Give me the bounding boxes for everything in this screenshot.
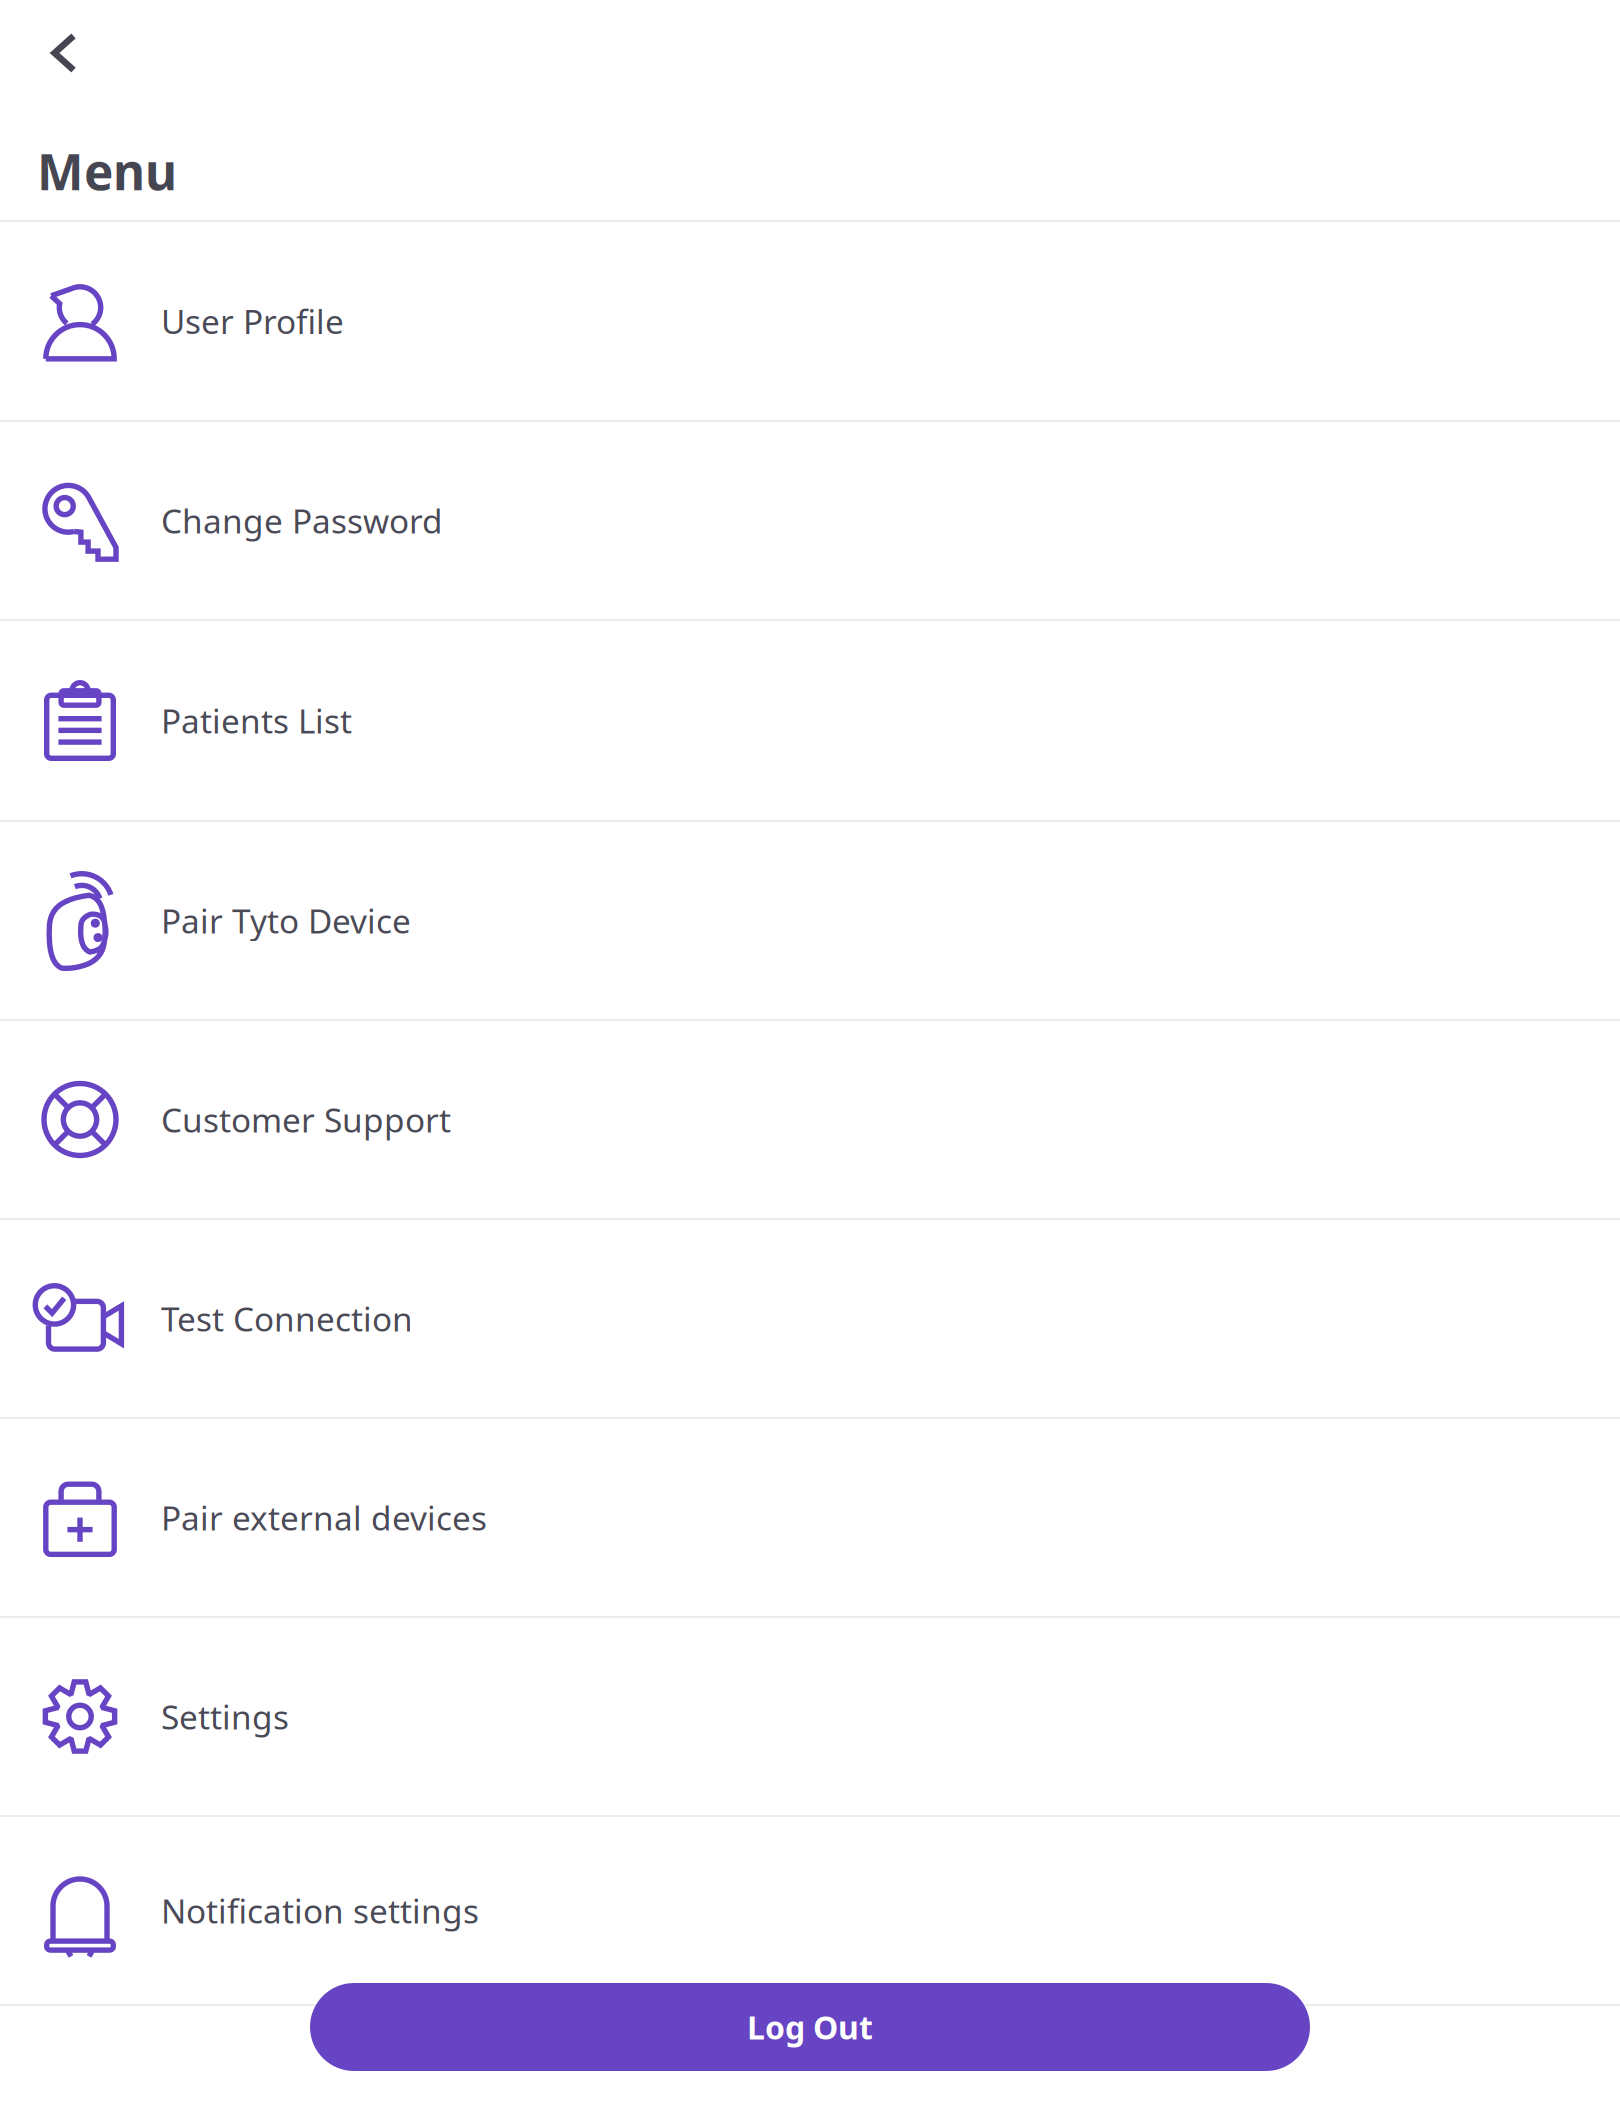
staticText: Notification settings bbox=[161, 1888, 479, 1933]
button[interactable]: Settings bbox=[0, 1618, 1620, 1815]
button[interactable]: Change Password bbox=[0, 422, 1620, 619]
button[interactable]: Pair external devices bbox=[0, 1419, 1620, 1616]
button[interactable]: Notification settings bbox=[0, 1817, 1620, 2004]
staticText: Pair external devices bbox=[161, 1495, 487, 1540]
button[interactable]: Log Out bbox=[310, 1983, 1310, 2071]
staticText: Log Out bbox=[747, 2006, 873, 2048]
button[interactable]: User Profile bbox=[0, 222, 1620, 420]
staticText: Menu bbox=[37, 138, 177, 204]
staticText: Test Connection bbox=[161, 1296, 413, 1341]
staticText: Change Password bbox=[161, 498, 443, 543]
staticText: Settings bbox=[161, 1694, 289, 1739]
staticText: User Profile bbox=[161, 299, 344, 343]
button[interactable]: Back bbox=[12, 1, 116, 105]
button[interactable]: Test Connection bbox=[0, 1220, 1620, 1417]
button[interactable]: Pair Tyto Device bbox=[0, 822, 1620, 1019]
button[interactable]: Customer Support bbox=[0, 1021, 1620, 1218]
staticText: Patients List bbox=[161, 698, 352, 743]
staticText: Pair Tyto Device bbox=[161, 898, 411, 943]
button[interactable]: Patients List bbox=[0, 621, 1620, 820]
staticText: Customer Support bbox=[161, 1097, 451, 1142]
